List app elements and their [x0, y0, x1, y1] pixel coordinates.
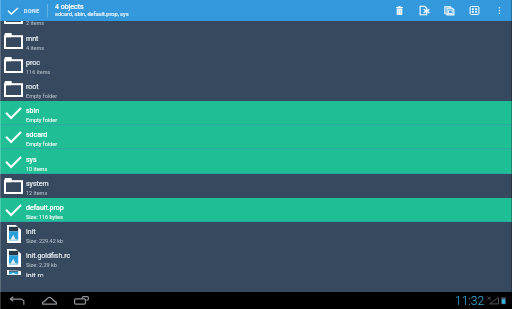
staticText: init.rc	[26, 272, 44, 277]
staticText: 116 items	[26, 69, 51, 75]
staticText: init.goldfish.rc	[26, 252, 71, 260]
staticText: system	[26, 180, 49, 188]
staticText: Size: 229.42 kb	[26, 238, 64, 244]
staticText: Empty folder	[26, 93, 58, 99]
staticText: sdcard, sbin, default.prop, sys	[55, 11, 129, 18]
staticText: Empty folder	[26, 141, 58, 147]
button[interactable]: Back	[1, 292, 33, 309]
staticText: DONE	[24, 8, 40, 14]
button[interactable]: sys	[0, 149, 512, 174]
staticText: 10 items	[26, 166, 48, 172]
button[interactable]: root	[0, 77, 512, 101]
button[interactable]: mnt	[0, 28, 512, 53]
button[interactable]: init.rc	[0, 270, 512, 275]
staticText: 12 items	[26, 190, 48, 196]
staticText: Size: 2.29 kb	[26, 262, 57, 268]
button[interactable]: More options	[487, 0, 512, 21]
button[interactable]: media	[0, 21, 512, 28]
button[interactable]: init	[0, 222, 512, 246]
button[interactable]: sbin	[0, 101, 512, 125]
staticText: sdcard	[26, 131, 48, 139]
staticText: init	[26, 228, 36, 236]
button[interactable]: Select all	[462, 0, 487, 21]
button[interactable]: Delete	[387, 0, 412, 21]
staticText: Empty folder	[26, 117, 58, 123]
button[interactable]: proc	[0, 53, 512, 77]
staticText: 4 objects	[55, 3, 84, 11]
button[interactable]: Copy	[437, 0, 462, 21]
button[interactable]: Home	[33, 292, 65, 309]
staticText: Size: 116 bytes	[26, 214, 63, 220]
staticText: root	[26, 83, 39, 91]
staticText: 2 items	[26, 21, 45, 26]
button[interactable]: Cut	[412, 0, 437, 21]
button[interactable]: DONE	[0, 0, 47, 21]
staticText: 4 items	[26, 45, 45, 51]
button[interactable]: sdcard	[0, 125, 512, 149]
button[interactable]: default.prop	[0, 198, 512, 222]
button[interactable]: init.goldfish.rc	[0, 246, 512, 270]
staticText: sbin	[26, 107, 40, 115]
staticText: mnt	[26, 35, 39, 43]
button[interactable]: Recents	[65, 292, 97, 309]
staticText: proc	[26, 59, 40, 67]
staticText: sys	[26, 156, 37, 164]
button[interactable]: system	[0, 174, 512, 198]
staticText: default.prop	[26, 204, 64, 212]
staticText: 11:32	[455, 294, 485, 308]
